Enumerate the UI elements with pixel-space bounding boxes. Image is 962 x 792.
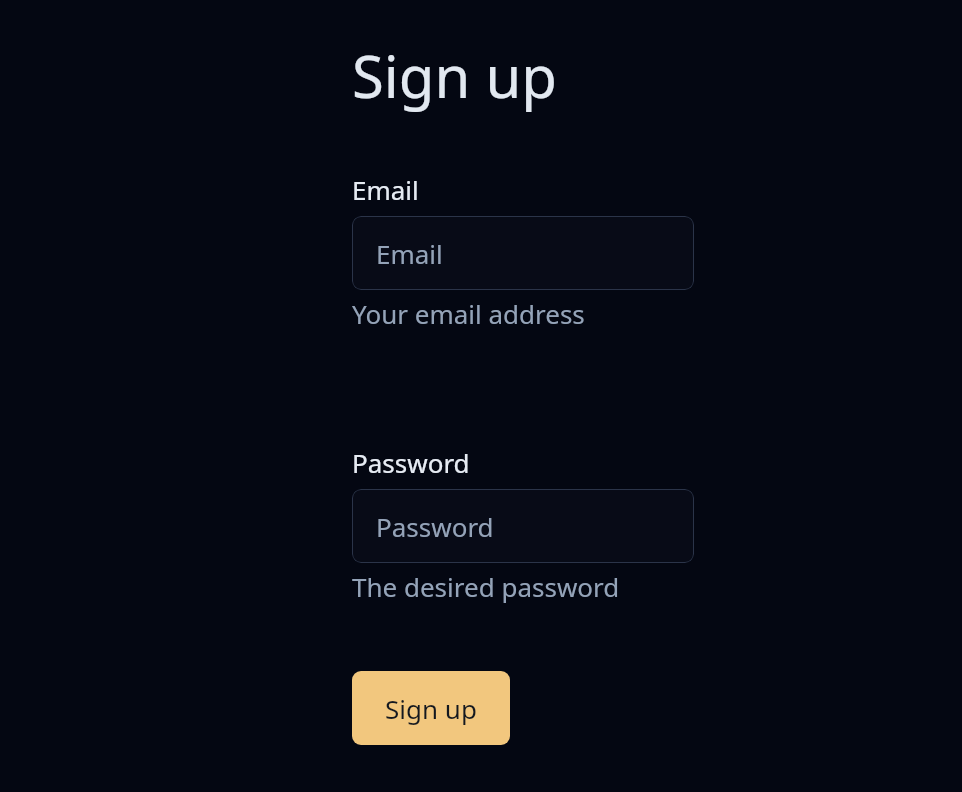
staticText: The desired password — [352, 569, 620, 604]
staticText: Password — [352, 445, 470, 480]
button[interactable]: Sign up — [352, 671, 510, 745]
staticText: Password — [376, 509, 494, 544]
staticText: Your email address — [352, 296, 585, 331]
staticText: Sign up — [385, 691, 477, 726]
button[interactable]: Email — [352, 216, 694, 290]
staticText: Email — [352, 172, 419, 207]
staticText: Sign up — [352, 36, 557, 115]
button[interactable]: Password — [352, 489, 694, 563]
staticText: Email — [376, 236, 443, 271]
